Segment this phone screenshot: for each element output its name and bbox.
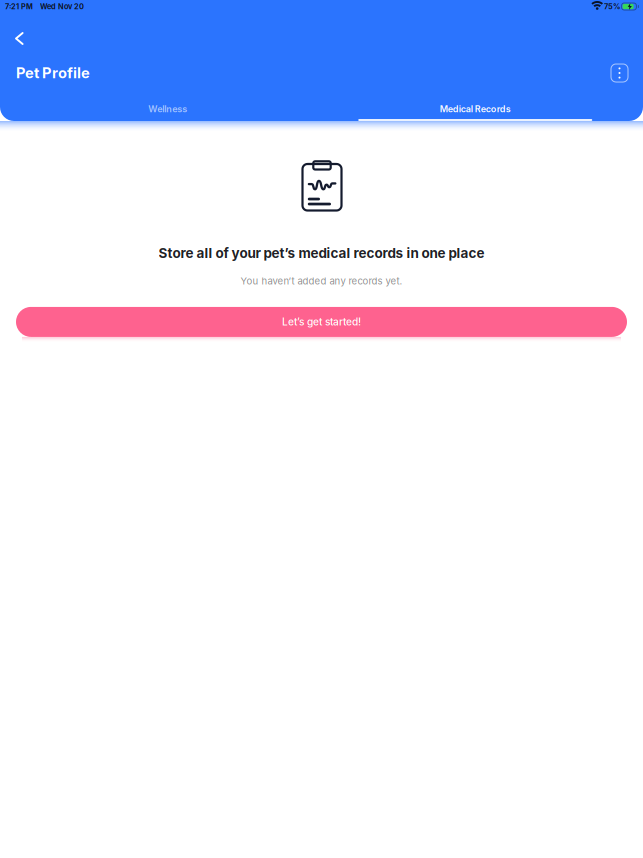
staticText: Wellness	[148, 103, 187, 114]
button[interactable]: Wellness	[14, 97, 321, 121]
button[interactable]: More options	[611, 64, 628, 82]
staticText: 7:21 PM	[5, 2, 33, 11]
staticText: Medical Records	[440, 103, 511, 114]
staticText: Store all of your pet’s medical records …	[158, 245, 484, 261]
staticText: Let’s get started!	[282, 316, 361, 328]
staticText: Pet Profile	[16, 64, 90, 82]
button[interactable]: Let’s get started!	[16, 307, 627, 337]
staticText: 75%	[604, 2, 620, 11]
button[interactable]: Back	[0, 28, 36, 49]
staticText: Wed Nov 20	[40, 2, 84, 11]
staticText: You haven’t added any records yet.	[240, 275, 402, 287]
button[interactable]: Medical Records	[321, 97, 629, 121]
